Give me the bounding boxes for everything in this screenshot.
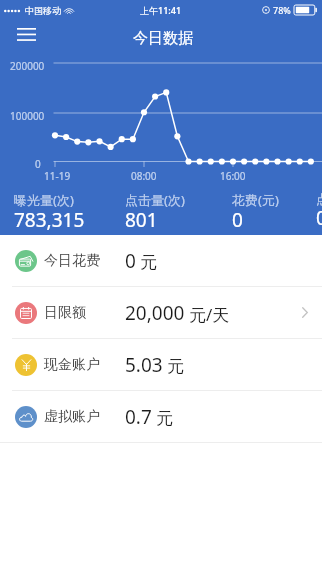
staticText: 今日花费	[44, 252, 100, 270]
staticText: 16:00	[220, 169, 246, 183]
staticText: 11-19	[44, 169, 71, 183]
staticText: 元	[140, 252, 157, 273]
button[interactable]: 今日花费	[0, 235, 322, 286]
staticText: 0	[125, 248, 136, 274]
staticText: 0	[316, 205, 322, 231]
staticText: 虚拟账户	[44, 408, 100, 426]
staticText: 78%	[273, 4, 291, 16]
staticText: 801	[125, 207, 158, 233]
button[interactable]: 点击量(次)	[125, 191, 185, 235]
staticText: 元	[156, 408, 173, 429]
staticText: 0	[35, 157, 41, 171]
staticText: 上午11:41	[140, 4, 182, 16]
button[interactable]: 现金账户	[0, 339, 322, 390]
button[interactable]: 点击率	[316, 191, 322, 233]
staticText: 0.7	[125, 404, 152, 430]
staticText: 现金账户	[44, 356, 100, 374]
staticText: 日限额	[44, 304, 86, 322]
staticText: 中国移动	[25, 5, 61, 16]
staticText: 元	[167, 356, 184, 377]
staticText: 今日数据	[133, 29, 193, 48]
staticText: 783,315	[14, 207, 85, 233]
button[interactable]: 曝光量(次)	[14, 191, 85, 235]
staticText: 5.03	[125, 352, 163, 378]
button[interactable]: 花费(元)	[232, 191, 279, 235]
staticText: 200000	[10, 59, 45, 73]
button[interactable]: Menu	[8, 21, 44, 48]
staticText: 点击率	[316, 191, 322, 207]
staticText: 08:00	[131, 169, 157, 183]
staticText: 花费(元)	[232, 191, 279, 209]
staticText: 20,000	[125, 300, 185, 326]
staticText: 0	[232, 207, 243, 233]
button[interactable]: 日限额	[0, 287, 322, 338]
staticText: 曝光量(次)	[14, 191, 74, 209]
staticText: 元/天	[189, 303, 230, 326]
button[interactable]: 虚拟账户	[0, 391, 322, 442]
staticText: 100000	[10, 109, 45, 123]
staticText: 点击量(次)	[125, 191, 185, 209]
